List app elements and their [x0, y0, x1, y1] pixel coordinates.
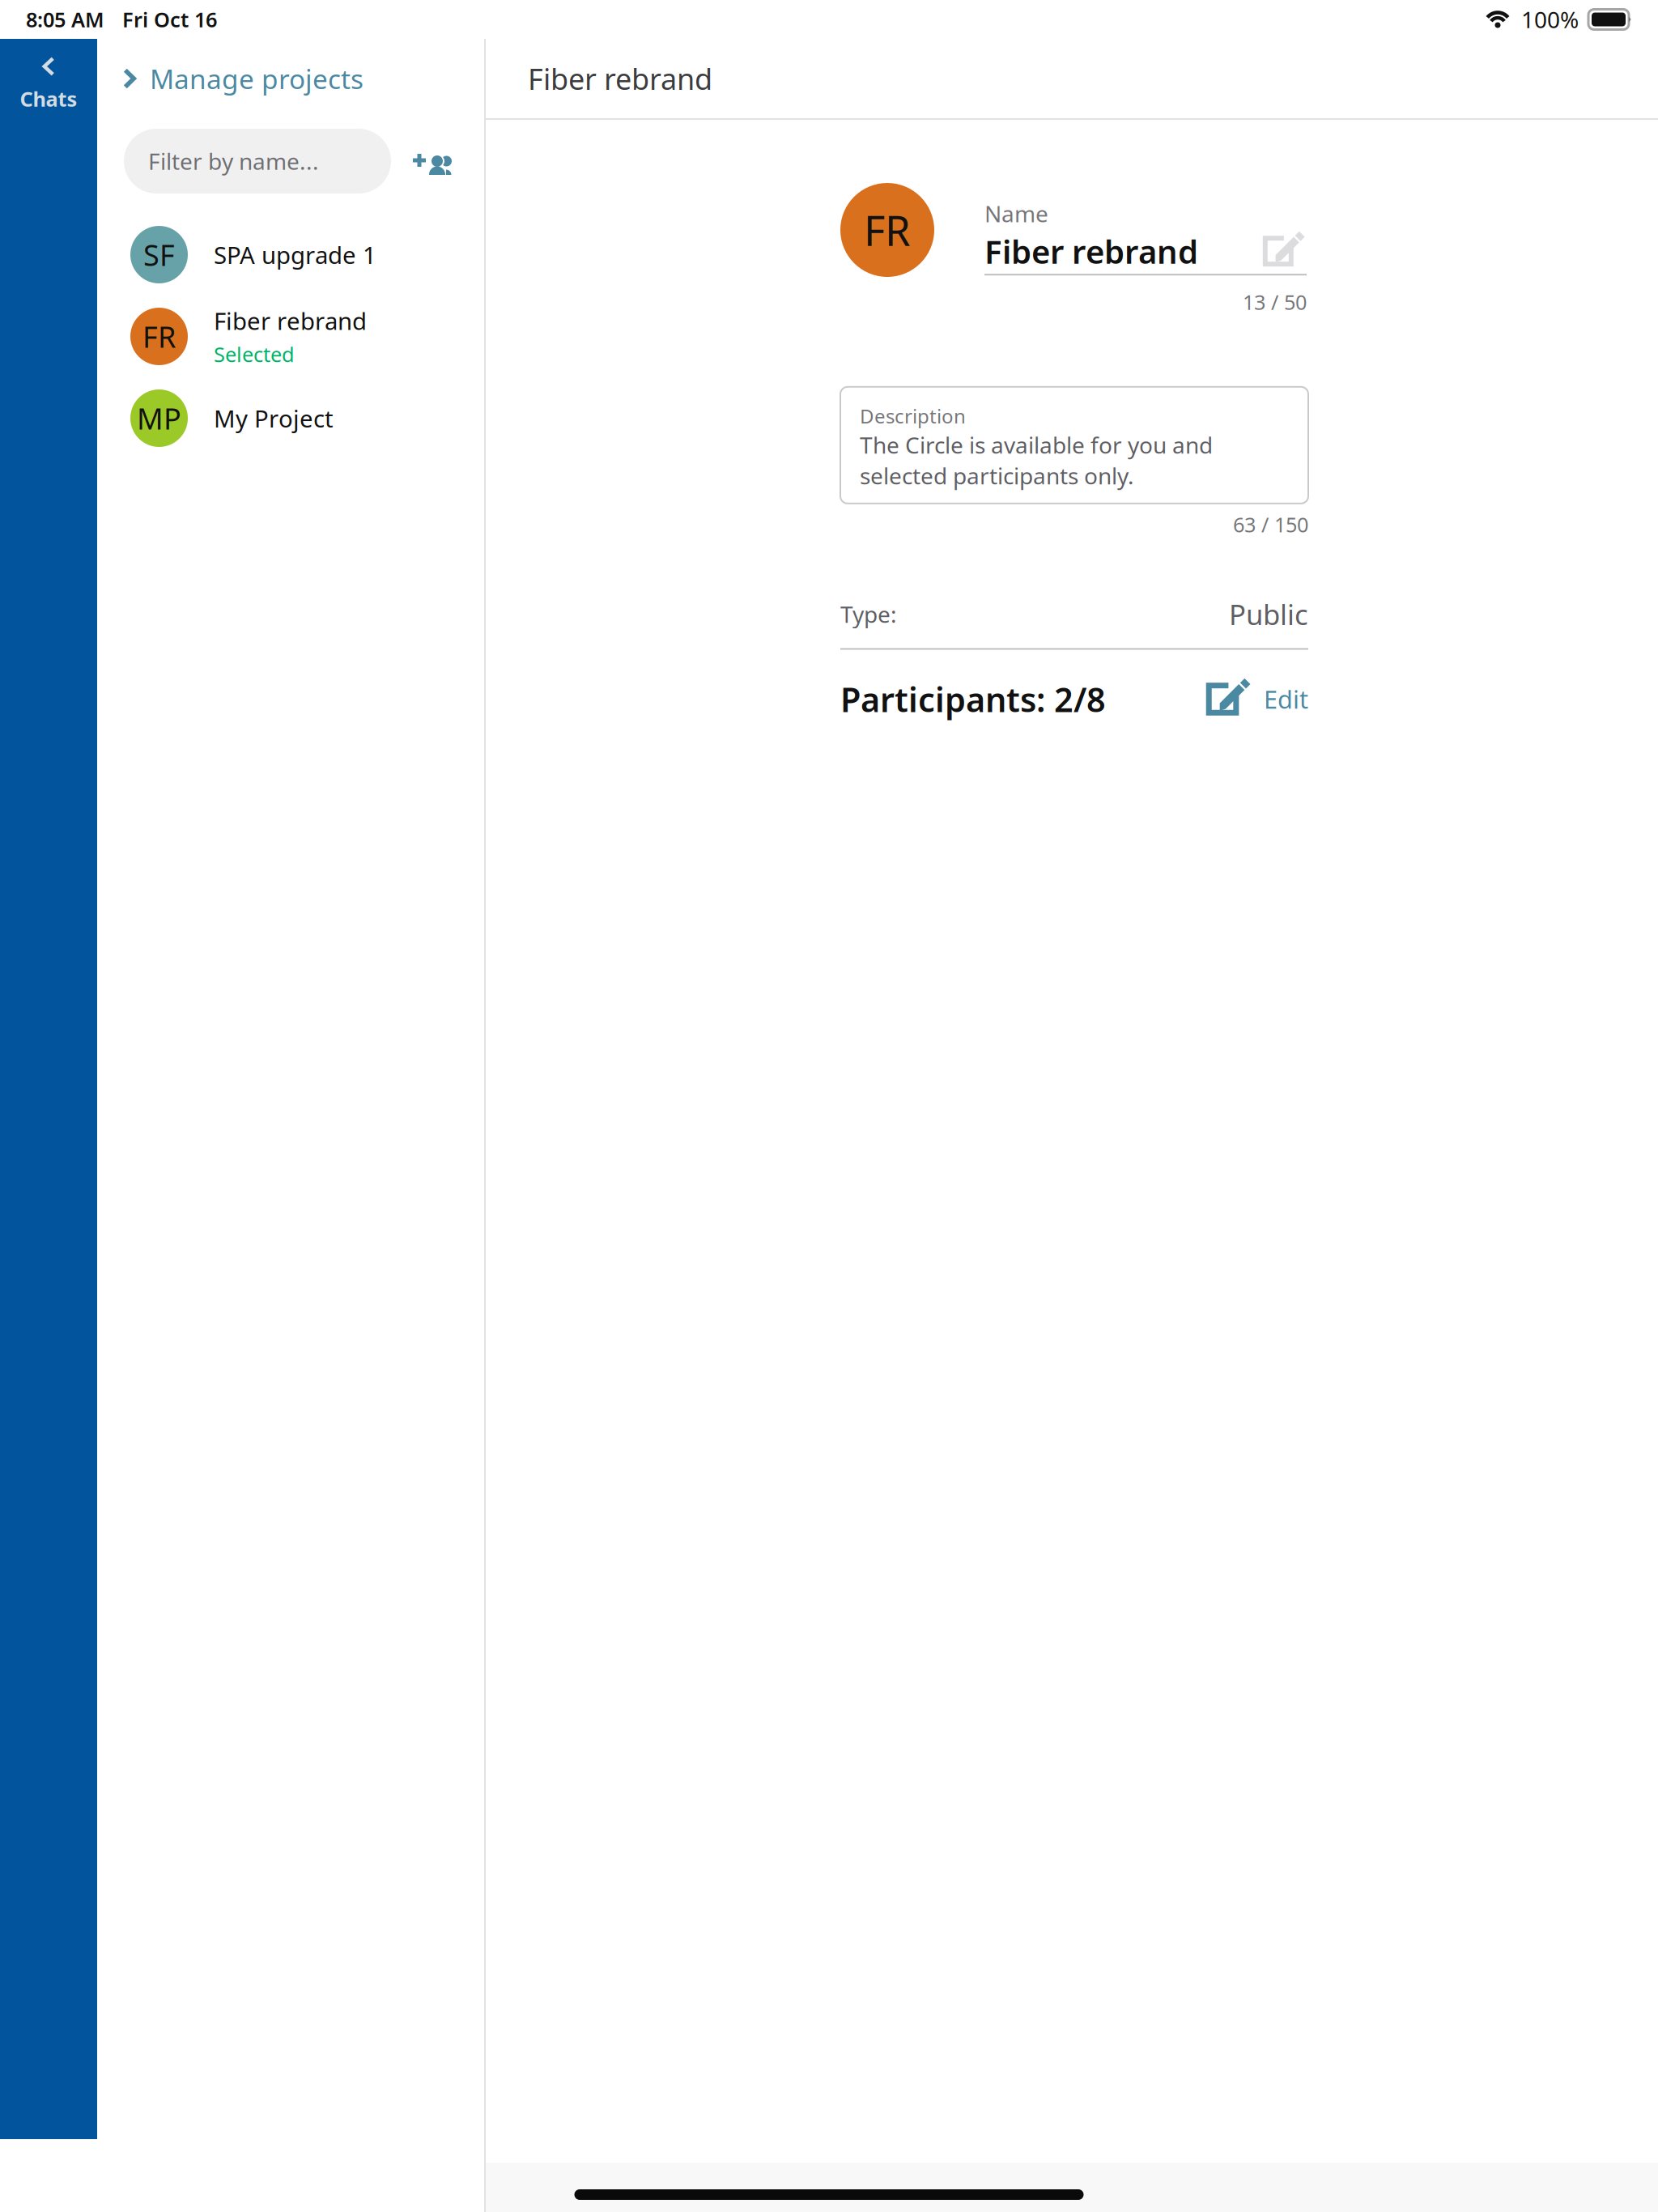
staticText: SPA upgrade 1: [214, 239, 376, 270]
staticText: My Project: [214, 402, 334, 434]
staticText: Fiber rebrand: [984, 230, 1198, 273]
staticText: Public: [1229, 595, 1308, 633]
staticText: MP: [137, 399, 181, 438]
staticText: 13 / 50: [1243, 288, 1307, 316]
button[interactable]: Chats: [0, 39, 97, 2139]
staticText: Chats: [20, 85, 77, 112]
staticText: Type:: [840, 599, 897, 629]
button[interactable]: SF: [97, 214, 484, 296]
button[interactable]: Manage projects: [97, 39, 484, 118]
staticText: FR: [142, 317, 176, 356]
staticText: 63 / 150: [1233, 511, 1308, 538]
button[interactable]: MP: [97, 377, 484, 459]
staticText: FR: [864, 203, 911, 257]
button[interactable]: FR: [97, 296, 484, 377]
staticText: Edit: [1264, 683, 1308, 716]
staticText: Fri Oct 16: [122, 6, 217, 33]
button[interactable]: Add participants: [412, 148, 454, 174]
staticText: Fiber rebrand: [214, 305, 367, 337]
button[interactable]: Edit: [1212, 682, 1308, 716]
staticText: Fiber rebrand: [528, 59, 712, 98]
staticText: 100%: [1521, 4, 1579, 34]
staticText: Selected: [214, 341, 295, 368]
staticText: Filter by name...: [148, 146, 319, 176]
button[interactable]: Edit name: [1268, 235, 1307, 267]
staticText: The Circle is available for you and: [860, 430, 1213, 460]
staticText: selected participants only.: [860, 461, 1134, 491]
staticText: 8:05 AM: [26, 6, 104, 33]
button[interactable]: Filter by name...: [124, 129, 391, 194]
staticText: Name: [984, 198, 1048, 228]
staticText: Description: [860, 403, 966, 429]
staticText: Participants: 2/8: [840, 677, 1106, 721]
staticText: SF: [143, 235, 175, 274]
staticText: Manage projects: [150, 61, 363, 97]
